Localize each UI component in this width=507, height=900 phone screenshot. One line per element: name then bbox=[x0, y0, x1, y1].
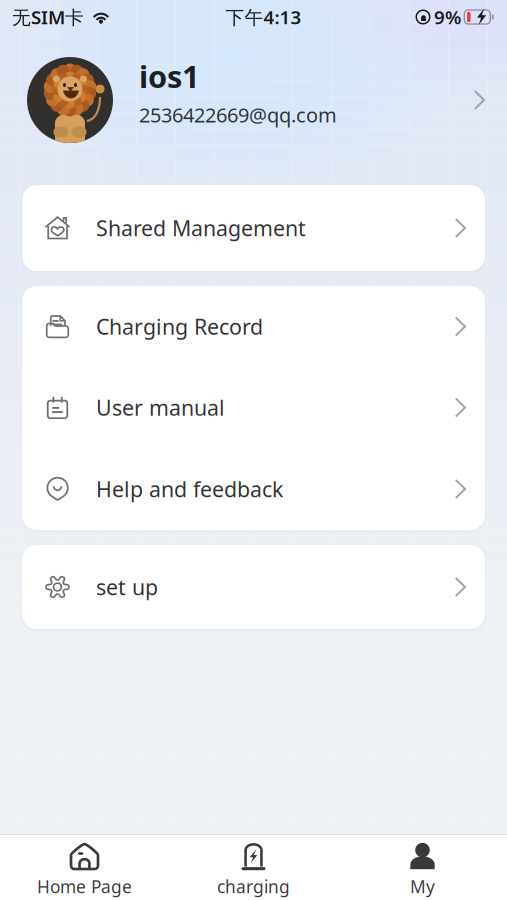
staticText: charging bbox=[217, 875, 290, 898]
staticText: My bbox=[410, 875, 435, 898]
button[interactable]: Home Page bbox=[0, 835, 169, 900]
button[interactable]: User manual bbox=[22, 367, 485, 448]
button[interactable]: Shared Management bbox=[22, 185, 485, 271]
staticText: Shared Management bbox=[96, 214, 306, 242]
staticText: 9% bbox=[434, 5, 461, 29]
button[interactable]: ios1 bbox=[0, 34, 507, 166]
staticText: Charging Record bbox=[96, 312, 263, 341]
button[interactable]: Charging Record bbox=[22, 286, 485, 367]
staticText: set up bbox=[96, 573, 158, 601]
staticText: Home Page bbox=[37, 875, 132, 898]
button[interactable]: charging bbox=[169, 835, 338, 900]
staticText: ios1 bbox=[139, 56, 200, 97]
staticText: 下午4:13 bbox=[225, 5, 301, 29]
staticText: User manual bbox=[96, 393, 225, 422]
button[interactable]: My bbox=[338, 835, 507, 900]
button[interactable]: Help and feedback bbox=[22, 448, 485, 530]
button[interactable]: set up bbox=[22, 545, 485, 629]
staticText: 无SIM卡 bbox=[12, 5, 84, 29]
staticText: 2536422669@qq.com bbox=[139, 102, 337, 128]
staticText: Help and feedback bbox=[96, 475, 283, 503]
